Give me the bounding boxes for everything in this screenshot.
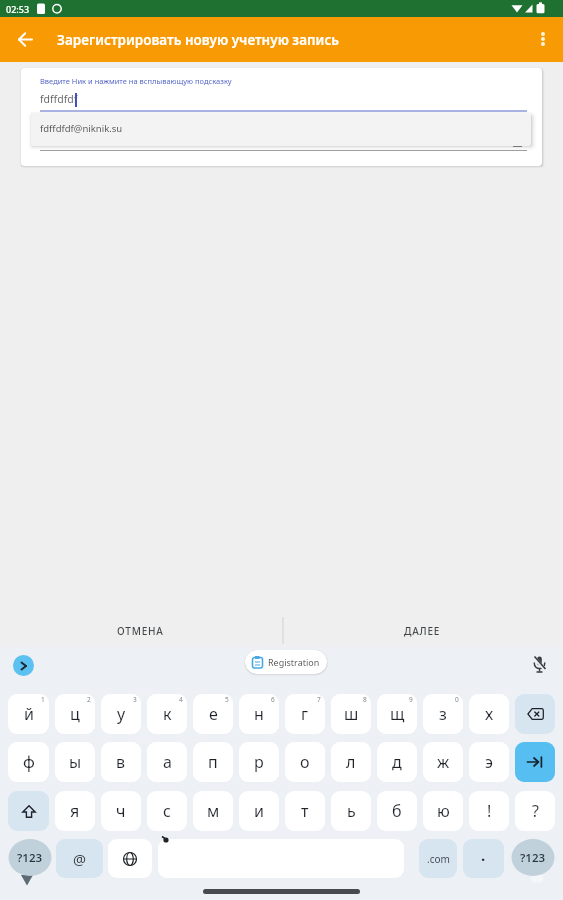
staticText: п: [208, 751, 218, 773]
button[interactable]: ДАЛЕЕ: [282, 614, 563, 647]
staticText: г: [301, 703, 309, 725]
button[interactable]: ь: [331, 791, 371, 831]
button[interactable]: в: [101, 742, 141, 782]
button[interactable]: !: [469, 791, 509, 831]
staticText: в: [116, 751, 126, 773]
staticText: о: [300, 751, 310, 773]
staticText: ц: [70, 703, 80, 725]
button[interactable]: т: [285, 791, 325, 831]
staticText: т: [301, 800, 309, 822]
button[interactable]: ы: [55, 742, 95, 782]
staticText: ?123: [17, 850, 43, 866]
button[interactable]: р: [239, 742, 279, 782]
button[interactable]: а: [147, 742, 187, 782]
staticText: ?: [532, 800, 539, 822]
button[interactable]: ю: [423, 791, 463, 831]
button[interactable]: [9, 23, 42, 56]
staticText: fdffdfdf@niknik.su: [40, 122, 123, 135]
staticText: ?123: [520, 850, 546, 866]
button[interactable]: к: [147, 694, 187, 734]
button[interactable]: .com: [419, 839, 457, 878]
button[interactable]: ?: [515, 791, 555, 831]
staticText: 6: [271, 695, 275, 704]
button[interactable]: е: [193, 694, 233, 734]
staticText: 1: [41, 695, 45, 704]
staticText: 0: [455, 695, 459, 704]
button[interactable]: [528, 24, 558, 54]
button[interactable]: о: [285, 742, 325, 782]
button[interactable]: с: [147, 791, 187, 831]
staticText: ы: [69, 751, 82, 773]
staticText: к: [163, 703, 172, 725]
staticText: б: [392, 800, 402, 822]
staticText: ь: [347, 800, 356, 822]
button[interactable]: д: [377, 742, 417, 782]
staticText: ш: [344, 703, 359, 725]
button[interactable]: б: [377, 791, 417, 831]
button[interactable]: ОТМЕНА: [0, 614, 281, 647]
staticText: Registration: [268, 656, 320, 668]
button[interactable]: у: [101, 694, 141, 734]
staticText: м: [207, 800, 220, 822]
staticText: х: [485, 703, 494, 725]
staticText: 02:53: [6, 3, 30, 15]
button[interactable]: щ: [377, 694, 417, 734]
button[interactable]: [108, 839, 152, 878]
staticText: !: [487, 800, 492, 822]
staticText: @: [73, 849, 87, 869]
button[interactable]: ф: [8, 742, 49, 782]
staticText: 3: [133, 695, 137, 704]
staticText: .com: [427, 852, 450, 866]
button[interactable]: [526, 651, 552, 677]
staticText: 5: [225, 695, 229, 704]
button[interactable]: н: [239, 694, 279, 734]
button[interactable]: ?123: [8, 839, 52, 876]
button[interactable]: ·: [463, 839, 504, 878]
button[interactable]: я: [55, 791, 95, 831]
button[interactable]: э: [469, 742, 509, 782]
button[interactable]: п: [193, 742, 233, 782]
button[interactable]: [8, 791, 49, 831]
staticText: й: [24, 703, 34, 725]
button[interactable]: ?123: [511, 839, 555, 876]
staticText: у: [117, 703, 126, 725]
staticText: 9: [409, 695, 413, 704]
button[interactable]: л: [331, 742, 371, 782]
staticText: ОТМЕНА: [117, 624, 164, 638]
staticText: ю: [437, 800, 450, 822]
button[interactable]: з: [423, 694, 463, 734]
staticText: н: [254, 703, 264, 725]
button[interactable]: й: [8, 694, 49, 734]
staticText: 2: [87, 695, 91, 704]
staticText: 8: [363, 695, 367, 704]
button[interactable]: ч: [101, 791, 141, 831]
button[interactable]: г: [285, 694, 325, 734]
button[interactable]: ш: [331, 694, 371, 734]
staticText: Введите Ник и нажмите на всплывающую под…: [40, 76, 232, 86]
staticText: ф: [23, 751, 35, 773]
staticText: ·: [481, 849, 486, 869]
staticText: с: [163, 800, 171, 822]
button[interactable]: м: [193, 791, 233, 831]
staticText: р: [254, 751, 264, 773]
button[interactable]: @: [56, 839, 103, 878]
staticText: fdffdfdf: [40, 92, 78, 106]
button[interactable]: Registration: [245, 650, 327, 674]
button[interactable]: [13, 655, 34, 676]
staticText: е: [209, 703, 218, 725]
button[interactable]: ц: [55, 694, 95, 734]
staticText: 4: [179, 695, 183, 704]
button[interactable]: х: [469, 694, 509, 734]
button[interactable]: [515, 694, 555, 734]
staticText: з: [439, 703, 447, 725]
button[interactable]: fdffdfdf@niknik.su: [31, 113, 531, 146]
staticText: 7: [317, 695, 321, 704]
staticText: и: [254, 800, 264, 822]
button[interactable]: [158, 839, 404, 878]
button[interactable]: и: [239, 791, 279, 831]
button[interactable]: ж: [423, 742, 463, 782]
staticText: ч: [116, 800, 126, 822]
staticText: ДАЛЕЕ: [404, 624, 441, 638]
button[interactable]: [515, 742, 555, 782]
staticText: э: [485, 751, 493, 773]
